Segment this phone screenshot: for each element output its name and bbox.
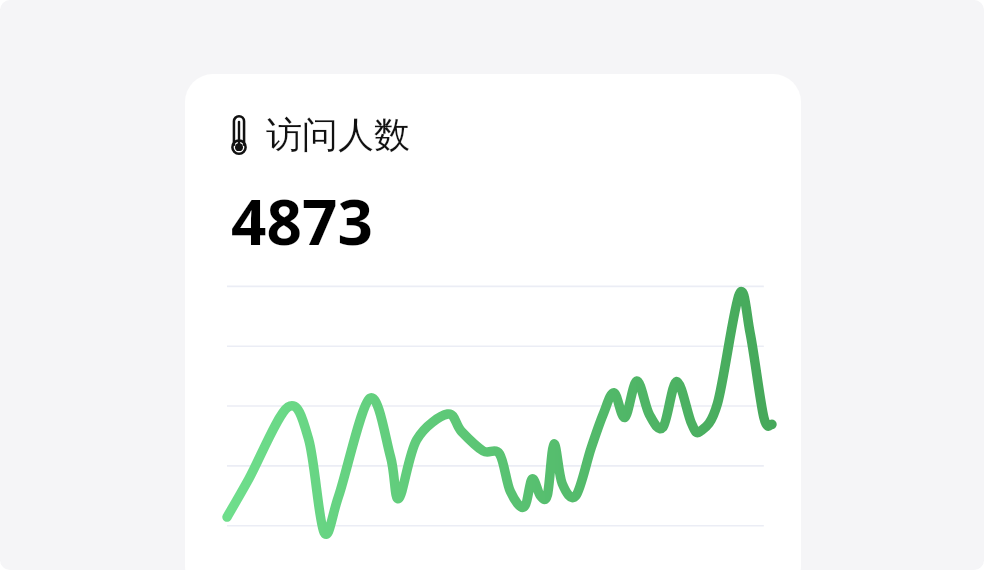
- staticText: 访问人数: [266, 112, 410, 157]
- button[interactable]: Temperature: [185, 74, 801, 570]
- staticText: 4873: [231, 179, 373, 263]
- other: Temperature: [228, 115, 250, 155]
